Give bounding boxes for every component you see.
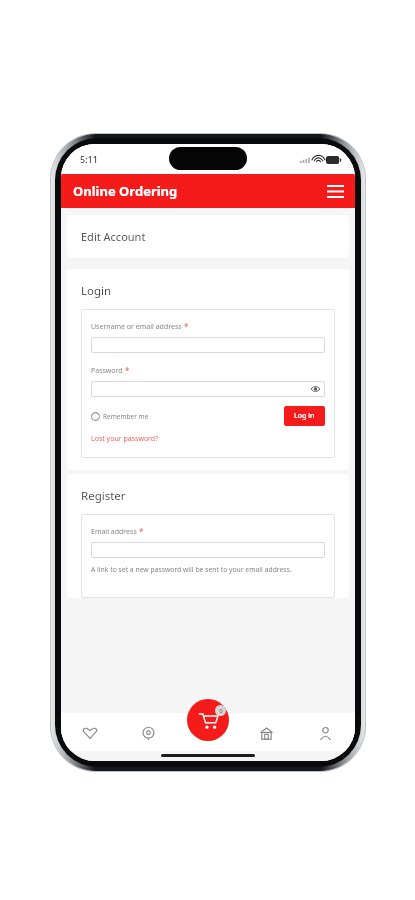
button[interactable] <box>91 542 325 558</box>
staticText: * <box>139 526 144 537</box>
staticText: Login <box>81 283 112 299</box>
button[interactable]: Favourites <box>61 715 119 751</box>
button[interactable]: Locations <box>119 715 178 751</box>
staticText: Online Ordering <box>73 182 178 200</box>
staticText: 0 <box>219 707 223 715</box>
button[interactable]: Show password <box>91 381 325 397</box>
staticText: Register <box>81 488 126 504</box>
staticText: A link to set a new password will be sen… <box>91 565 292 574</box>
staticText: Username or email address <box>91 322 182 332</box>
staticText: * <box>184 321 189 332</box>
staticText: Password <box>91 366 123 376</box>
button[interactable] <box>91 337 325 353</box>
staticText: Edit Account <box>81 229 146 244</box>
button[interactable]: Lost your password? <box>91 434 159 444</box>
button[interactable]: Show password <box>310 384 320 394</box>
staticText: Remember me <box>103 412 149 421</box>
button[interactable]: Menu <box>324 180 346 202</box>
button[interactable]: Home <box>237 715 296 751</box>
staticText: * <box>125 365 130 376</box>
staticText: Email address <box>91 527 137 537</box>
button[interactable]: Remember me <box>91 412 149 421</box>
staticText: Log in <box>294 411 315 421</box>
staticText: 5:11 <box>80 153 98 165</box>
button[interactable]: Account <box>296 715 355 751</box>
button[interactable]: Edit Account <box>67 215 349 258</box>
button[interactable]: Log in <box>284 406 325 426</box>
button[interactable]: Cart <box>187 699 229 741</box>
